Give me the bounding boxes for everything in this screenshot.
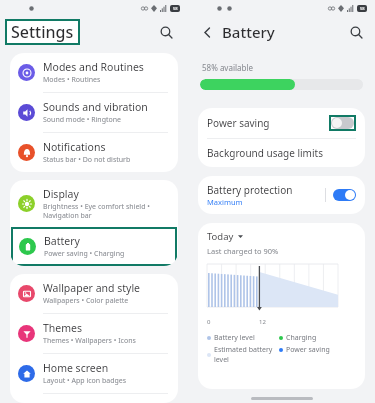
button[interactable]: Modes and Routines [10, 53, 178, 93]
staticText: Battery [222, 22, 275, 42]
staticText: Power saving [286, 345, 330, 355]
button[interactable]: Wallpaper and style [10, 274, 178, 314]
staticText: Modes • Routines [43, 75, 101, 85]
staticText: Wallpaper and style [43, 281, 141, 295]
staticText: Today [207, 230, 234, 243]
staticText: Wallpapers • Color palette [43, 296, 129, 306]
button[interactable]: Notifications [10, 133, 178, 172]
button[interactable]: Background usage limits [198, 139, 365, 167]
staticText: Power saving • Charging [44, 249, 125, 259]
staticText: Themes [43, 321, 83, 335]
button[interactable] [333, 189, 356, 201]
staticText: 58 [360, 6, 365, 11]
staticText: 12 [259, 318, 266, 326]
staticText: Settings [11, 21, 74, 43]
staticText: Sound mode • Ringtone [43, 115, 121, 125]
staticText: Background usage limits [207, 146, 323, 160]
button[interactable]: Battery [11, 227, 177, 266]
staticText: Notifications [43, 140, 106, 154]
button[interactable]: Display [10, 180, 178, 227]
button[interactable]: Battery [11, 227, 177, 266]
staticText: Charging [286, 333, 317, 343]
button[interactable]: Power saving [198, 108, 365, 138]
staticText: 58% available [202, 62, 254, 73]
staticText: Brightness • Eye comfort shield • Naviga… [43, 202, 150, 220]
staticText: 0 [207, 318, 211, 326]
staticText: Power saving [207, 116, 270, 130]
button[interactable]: Today [207, 230, 243, 243]
button[interactable]: Back [196, 21, 218, 43]
staticText: Battery level [214, 333, 255, 343]
staticText: 58 [173, 6, 178, 11]
button[interactable] [331, 117, 354, 129]
staticText: Sounds and vibration [43, 100, 148, 114]
staticText: Maximum [207, 197, 243, 207]
staticText: Layout • App icon badges [43, 376, 127, 386]
staticText: Last charged to 90% [207, 246, 279, 256]
staticText: Home screen [43, 361, 109, 375]
staticText: Battery [44, 234, 80, 248]
staticText: Status bar • Do not disturb [43, 155, 131, 165]
button[interactable]: Sounds and vibration [10, 93, 178, 133]
button[interactable]: Home screen [10, 354, 178, 394]
button[interactable]: Themes [10, 314, 178, 354]
button[interactable]: Search [154, 20, 178, 44]
staticText: Modes and Routines [43, 60, 144, 74]
staticText: Estimated battery level [214, 345, 279, 365]
staticText: Battery protection [207, 183, 293, 197]
staticText: Themes • Wallpapers • Icons [43, 336, 136, 346]
button[interactable]: Settings [11, 21, 74, 43]
button[interactable]: Search [345, 21, 367, 43]
staticText: Display [43, 187, 79, 201]
button[interactable]: Battery protection [198, 176, 365, 214]
